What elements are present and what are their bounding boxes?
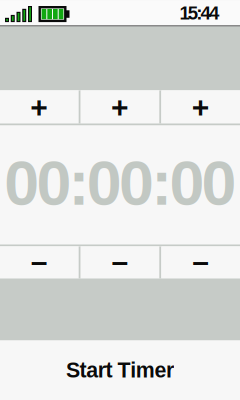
- button[interactable]: Start Timer: [0, 340, 240, 399]
- staticText: +: [111, 90, 129, 124]
- staticText: –: [111, 245, 128, 278]
- button[interactable]: Decrease: [81, 246, 159, 278]
- staticText: +: [192, 90, 210, 124]
- button[interactable]: Decrease: [0, 246, 79, 278]
- staticText: –: [31, 245, 48, 278]
- staticText: Start Timer: [66, 358, 174, 382]
- staticText: 15:44: [179, 3, 219, 23]
- staticText: –: [192, 245, 209, 278]
- button[interactable]: Increase: [0, 90, 79, 123]
- button[interactable]: Decrease: [161, 246, 240, 278]
- staticText: +: [30, 90, 48, 124]
- staticText: 00:00:00: [4, 148, 237, 218]
- button[interactable]: Increase: [81, 90, 159, 123]
- button[interactable]: Increase: [161, 90, 240, 123]
